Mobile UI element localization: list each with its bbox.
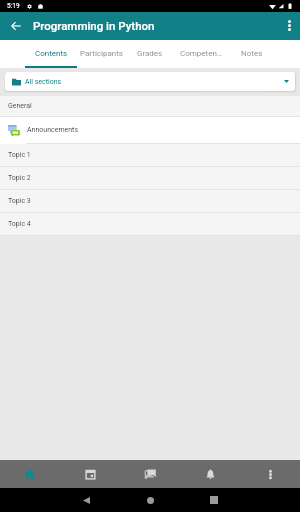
button[interactable]: Contents (25, 40, 77, 68)
button[interactable]: Topic 2 (0, 167, 300, 189)
button[interactable]: Participants (70, 40, 132, 68)
button[interactable]: Grades (127, 40, 172, 68)
button[interactable]: Notes (231, 40, 272, 68)
button[interactable]: Topic 3 (0, 190, 300, 212)
button[interactable]: Notifications (180, 460, 240, 488)
button[interactable]: Announcements (0, 117, 300, 143)
button[interactable]: Back (0, 12, 32, 40)
staticText: Topic 4 (8, 220, 31, 228)
button[interactable]: Topic 4 (0, 213, 300, 235)
staticText: Topic 1 (8, 151, 31, 159)
button[interactable]: Home (0, 460, 60, 488)
button[interactable]: General (0, 96, 300, 116)
button[interactable]: Messages (120, 460, 180, 488)
staticText: Announcements (27, 126, 79, 134)
staticText: Notes (241, 49, 263, 58)
staticText: Competen… (180, 49, 223, 58)
staticText: All sections (25, 78, 62, 86)
button[interactable]: Home (136, 488, 164, 512)
staticText: Topic 2 (8, 174, 31, 182)
staticText: Topic 3 (8, 197, 31, 205)
staticText: Grades (137, 49, 163, 58)
button[interactable]: Recents (200, 488, 228, 512)
staticText: Contents (35, 49, 68, 58)
button[interactable]: Topic 1 (0, 144, 300, 166)
button[interactable]: All sections (5, 72, 295, 91)
staticText: General (8, 102, 32, 110)
button[interactable]: Back (72, 488, 100, 512)
button[interactable]: More (240, 460, 300, 488)
button[interactable]: More options (278, 12, 300, 40)
button[interactable]: Competen… (170, 40, 232, 68)
staticText: Participants (80, 49, 123, 58)
staticText: 5:19 (7, 2, 20, 10)
button[interactable]: Calendar (60, 460, 120, 488)
staticText: Programming in Python (33, 19, 155, 32)
